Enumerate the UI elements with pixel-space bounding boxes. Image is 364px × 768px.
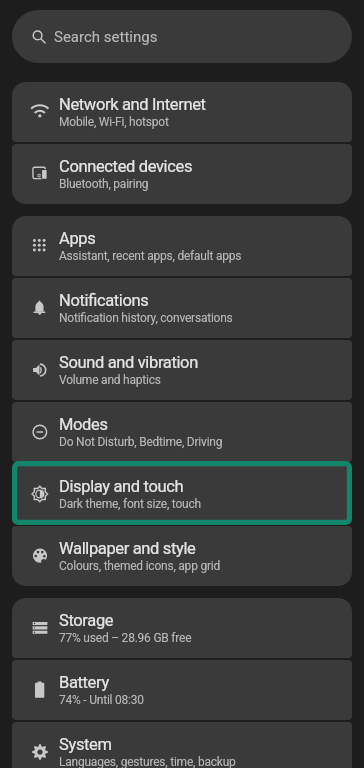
button[interactable]: Modes bbox=[12, 402, 352, 462]
staticText: Dark theme, font size, touch bbox=[59, 497, 201, 511]
staticText: Search settings bbox=[54, 28, 158, 46]
button[interactable]: Battery bbox=[12, 660, 352, 720]
staticText: Languages, gestures, time, backup bbox=[59, 755, 236, 768]
button[interactable]: Sound and vibration bbox=[12, 340, 352, 400]
button[interactable]: Notifications bbox=[12, 278, 352, 338]
staticText: Sound and vibration bbox=[59, 353, 198, 372]
button[interactable]: Wallpaper and style bbox=[12, 526, 352, 586]
button[interactable]: Connected devices bbox=[12, 144, 352, 204]
staticText: System bbox=[59, 735, 112, 754]
staticText: Do Not Disturb, Bedtime, Driving bbox=[59, 435, 223, 449]
button[interactable]: Display and touch bbox=[12, 464, 352, 524]
staticText: Storage bbox=[59, 611, 114, 630]
staticText: Notifications bbox=[59, 291, 149, 310]
staticText: Volume and haptics bbox=[59, 373, 161, 387]
button[interactable]: Network and Internet bbox=[12, 82, 352, 142]
staticText: Wallpaper and style bbox=[59, 539, 196, 558]
staticText: Assistant, recent apps, default apps bbox=[59, 249, 242, 263]
staticText: Modes bbox=[59, 415, 108, 434]
staticText: Network and Internet bbox=[59, 95, 206, 114]
staticText: Display and touch bbox=[59, 477, 184, 496]
staticText: Bluetooth, pairing bbox=[59, 177, 149, 191]
staticText: Mobile, Wi-Fi, hotspot bbox=[59, 115, 169, 129]
staticText: 77% used – 28.96 GB free bbox=[59, 631, 192, 645]
button[interactable]: Storage bbox=[12, 598, 352, 658]
button[interactable]: System bbox=[12, 722, 352, 768]
staticText: Connected devices bbox=[59, 157, 193, 176]
button[interactable]: Apps bbox=[12, 216, 352, 276]
staticText: Battery bbox=[59, 673, 109, 692]
staticText: 74% - Until 08:30 bbox=[59, 693, 144, 707]
staticText: Colours, themed icons, app grid bbox=[59, 559, 221, 573]
button[interactable]: Search settings bbox=[12, 10, 352, 63]
staticText: Apps bbox=[59, 229, 96, 248]
staticText: Notification history, conversations bbox=[59, 311, 233, 325]
